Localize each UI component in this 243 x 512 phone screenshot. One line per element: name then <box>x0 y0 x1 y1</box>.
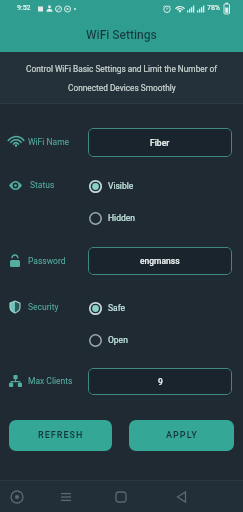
staticText: Control WiFi Basic Settings and Limit th… <box>26 64 218 74</box>
staticText: 9 <box>158 377 163 387</box>
button[interactable]: engmanss <box>88 247 232 275</box>
staticText: Security <box>28 302 59 312</box>
button[interactable]: 9 <box>88 368 232 395</box>
button[interactable] <box>9 489 25 505</box>
staticText: Fiber <box>150 138 170 148</box>
staticText: engmanss <box>140 256 180 266</box>
button[interactable]: APPLY <box>129 420 234 451</box>
button[interactable]: REFRESH <box>9 420 112 451</box>
staticText: APPLY <box>166 430 198 441</box>
staticText: Connected Devices Smoothly <box>68 83 176 93</box>
button[interactable]: Open <box>89 333 128 347</box>
button[interactable]: Hidden <box>89 211 135 225</box>
button[interactable]: Visible <box>89 179 134 193</box>
button[interactable]: Safe <box>89 301 126 315</box>
button[interactable] <box>174 489 190 505</box>
staticText: 9:52 <box>17 4 31 12</box>
staticText: Hidden <box>108 213 135 223</box>
staticText: 78% <box>207 4 220 12</box>
staticText: WiFi Name <box>28 137 70 147</box>
staticText: Max Clients <box>28 376 73 386</box>
button[interactable]: Fiber <box>88 128 232 157</box>
staticText: Status <box>30 180 55 190</box>
staticText: Visible <box>108 181 134 191</box>
staticText: Open <box>108 335 128 345</box>
button[interactable] <box>58 489 74 505</box>
staticText: Password <box>28 256 66 266</box>
button[interactable] <box>113 489 129 505</box>
staticText: WiFi Settings <box>86 28 157 42</box>
staticText: REFRESH <box>38 430 84 441</box>
staticText: Safe <box>108 303 126 313</box>
